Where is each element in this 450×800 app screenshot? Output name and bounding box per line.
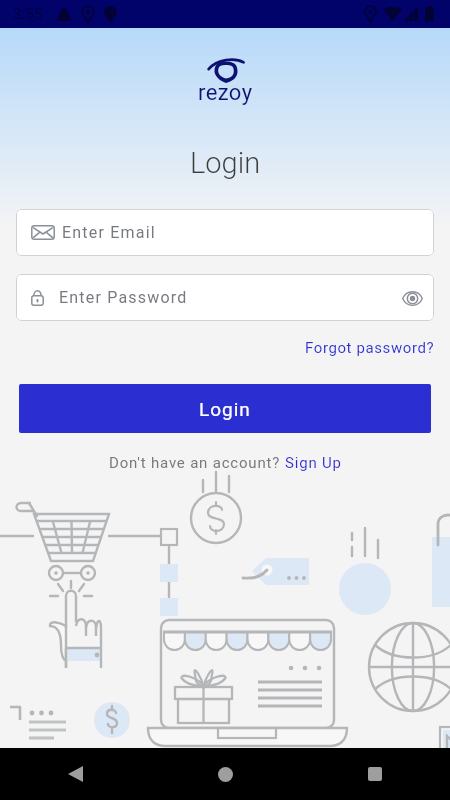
- button[interactable]: Recents: [353, 752, 397, 796]
- staticText: 3:55: [13, 5, 43, 23]
- button[interactable]: Back: [53, 752, 97, 796]
- button[interactable]: Show password: [399, 285, 425, 311]
- staticText: Enter Email: [62, 223, 156, 242]
- staticText: Login: [190, 146, 261, 180]
- button[interactable]: Forgot password?: [301, 336, 439, 360]
- staticText: Enter Password: [59, 288, 188, 307]
- staticText: rezoy: [198, 80, 253, 106]
- button[interactable]: Login: [19, 384, 431, 433]
- staticText: Sign Up: [285, 454, 342, 472]
- button[interactable]: Sign Up: [285, 454, 342, 472]
- staticText: Login: [199, 398, 251, 420]
- staticText: Forgot password?: [305, 339, 435, 357]
- button[interactable]: Home: [203, 752, 247, 796]
- staticText: Don't have an account?: [109, 454, 285, 472]
- button[interactable]: Enter Email: [16, 209, 434, 256]
- button[interactable]: Enter Password: [16, 274, 434, 321]
